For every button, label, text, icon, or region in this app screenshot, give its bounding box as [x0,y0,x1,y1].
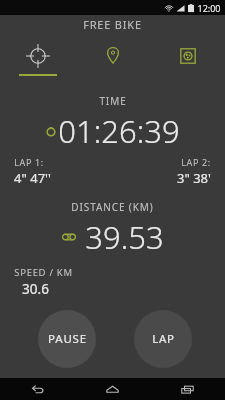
staticText: FREE BIKE [83,17,142,32]
button[interactable]: LAP [134,310,192,368]
staticText: 01:26:39 [58,110,180,152]
staticText: LAP 1: [14,156,44,168]
staticText: TIME [99,94,127,108]
staticText: LAP [152,331,175,347]
button[interactable]: Location pin [75,34,150,82]
staticText: 12:00 [197,2,221,14]
staticText: SPEED / KM [14,266,73,279]
button[interactable]: Camera [150,34,225,82]
staticText: 3" 38' [177,169,211,187]
staticText: 39.53 [85,216,164,258]
staticText: 30.6 [22,280,49,298]
button[interactable]: Back [0,378,75,400]
staticText: DISTANCE (KM) [71,200,154,214]
button[interactable]: GPS target [0,34,75,82]
staticText: PAUSE [48,331,87,347]
staticText: LAP 2: [181,156,211,168]
button[interactable]: PAUSE [38,310,96,368]
button[interactable]: Recents [150,378,225,400]
staticText: 4" 47'' [14,169,51,187]
button[interactable]: Home [75,378,150,400]
